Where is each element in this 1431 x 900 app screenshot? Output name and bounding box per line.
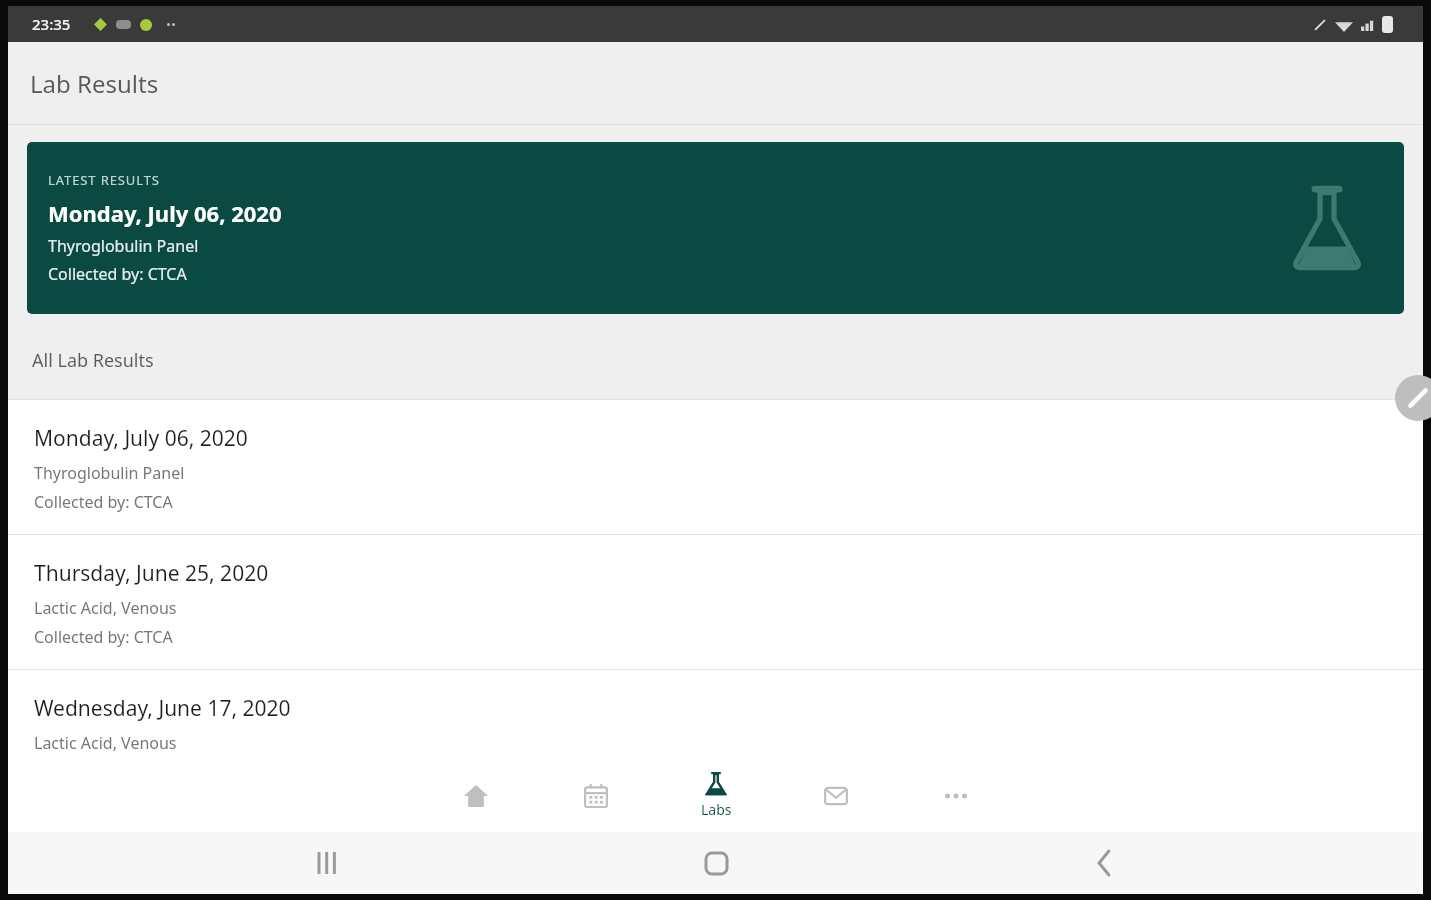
button[interactable]: Home — [416, 760, 536, 832]
staticText: 23:35 — [32, 14, 71, 34]
staticText: All Lab Results — [32, 348, 154, 373]
staticText: Lactic Acid, Venous — [34, 597, 177, 619]
staticText: Thursday, June 25, 2020 — [34, 559, 269, 588]
staticText: Collected by: CTCA — [34, 626, 173, 648]
staticText: Monday, July 06, 2020 — [34, 424, 248, 453]
staticText: Collected by: CTCA — [34, 491, 173, 513]
button[interactable]: Labs — [656, 760, 776, 832]
button[interactable]: Edit — [1395, 375, 1431, 421]
staticText: Lab Results — [30, 67, 159, 100]
button[interactable]: Recents — [257, 832, 397, 894]
staticText: LATEST RESULTS — [48, 171, 160, 189]
staticText: Collected by: CTCA — [48, 263, 187, 285]
button[interactable]: Home — [646, 832, 786, 894]
button[interactable]: Monday, July 06, 2020 — [8, 400, 1423, 534]
button[interactable]: Thursday, June 25, 2020 — [8, 535, 1423, 669]
staticText: Wednesday, June 17, 2020 — [34, 694, 291, 723]
staticText: Lactic Acid, Venous — [34, 732, 177, 754]
button[interactable]: Back — [1034, 832, 1174, 894]
staticText: Monday, July 06, 2020 — [48, 198, 282, 228]
staticText: Thyroglobulin Panel — [34, 462, 185, 484]
button[interactable]: More — [896, 760, 1016, 832]
button[interactable]: Wednesday, June 17, 2020 — [8, 670, 1423, 804]
button[interactable]: Appointments — [536, 760, 656, 832]
button[interactable]: Messages — [776, 760, 896, 832]
button[interactable]: Tuesday, June 09, 2020 — [8, 805, 1423, 832]
staticText: Thyroglobulin Panel — [48, 235, 199, 257]
staticText: Labs — [701, 800, 732, 819]
button[interactable]: LATEST RESULTS — [27, 142, 1404, 314]
